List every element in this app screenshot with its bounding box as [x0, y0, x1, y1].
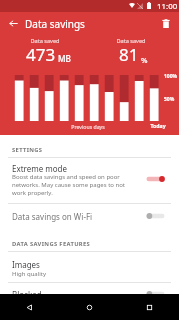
button[interactable]: Delete [154, 12, 177, 35]
button[interactable] [0, 157, 179, 203]
staticText: Today [143, 122, 173, 129]
button[interactable] [0, 282, 179, 294]
staticText: 100% [164, 73, 178, 80]
staticText: Blocked [12, 289, 42, 300]
staticText: 11:00 [157, 1, 178, 12]
staticText: SETTINGS [12, 146, 43, 154]
button[interactable]: Back [2, 12, 25, 35]
staticText: Previous days [58, 123, 118, 130]
staticText: Data savings [25, 17, 85, 31]
staticText: Images [12, 259, 40, 270]
button[interactable]: Switch off [146, 210, 165, 222]
staticText: 473 [26, 43, 56, 66]
staticText: High quality [12, 270, 47, 278]
button[interactable]: Recent apps [119, 294, 179, 320]
staticText: Data saved [101, 37, 161, 45]
button[interactable]: Switch on [146, 173, 165, 185]
staticText: 81 [119, 43, 139, 66]
staticText: Data savings on Wi-Fi [12, 211, 93, 222]
button[interactable]: Back [0, 294, 59, 320]
button[interactable]: Home [59, 294, 119, 320]
staticText: Extreme mode [12, 163, 68, 174]
button[interactable]: Switch off [146, 288, 165, 300]
staticText: MB [58, 53, 71, 64]
staticText: 50% [164, 96, 175, 103]
staticText: DATA SAVINGS FEATURES [12, 240, 91, 248]
button[interactable] [0, 203, 179, 226]
staticText: Boost data savings and speed on poor net… [12, 173, 129, 197]
staticText: Data saved [15, 37, 75, 45]
staticText: % [141, 55, 148, 65]
button[interactable] [0, 251, 179, 282]
